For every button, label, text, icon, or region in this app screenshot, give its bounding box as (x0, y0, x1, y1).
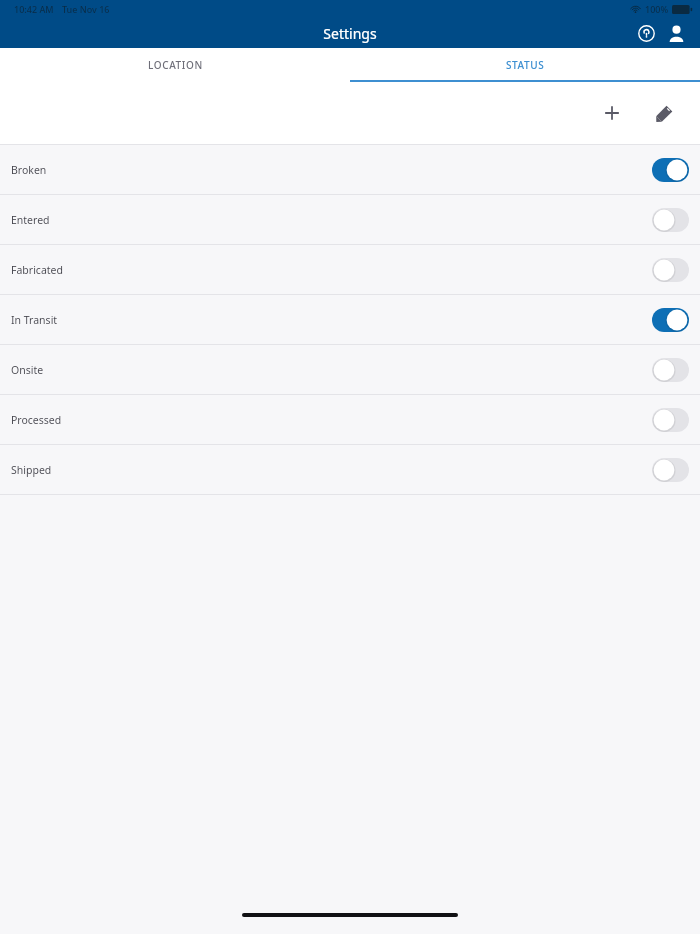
staticText: Tue Nov 16 (62, 3, 110, 15)
staticText: 10:42 AM (14, 3, 54, 15)
button[interactable]: Account (662, 19, 690, 47)
button[interactable]: Fabricated (0, 245, 700, 294)
staticText: Fabricated (11, 263, 63, 277)
button[interactable]: Help (632, 19, 660, 47)
button[interactable]: Entered (0, 195, 700, 244)
button[interactable]: LOCATION (0, 48, 350, 82)
staticText: STATUS (506, 58, 545, 72)
button[interactable]: Onsite (0, 345, 700, 394)
button[interactable]: Processed (0, 395, 700, 444)
staticText: 100% (645, 3, 669, 15)
staticText: LOCATION (148, 58, 203, 72)
staticText: Onsite (11, 363, 44, 377)
button[interactable]: Add (592, 93, 632, 133)
staticText: Broken (11, 163, 47, 177)
staticText: In Transit (11, 313, 58, 327)
staticText: Processed (11, 413, 62, 427)
button[interactable]: Edit (644, 93, 684, 133)
button[interactable]: STATUS (350, 48, 700, 82)
button[interactable]: Shipped (0, 445, 700, 494)
button[interactable]: In Transit (0, 295, 700, 344)
staticText: Settings (323, 24, 377, 43)
button[interactable]: Broken (0, 145, 700, 194)
staticText: Shipped (11, 463, 52, 477)
staticText: Entered (11, 213, 50, 227)
